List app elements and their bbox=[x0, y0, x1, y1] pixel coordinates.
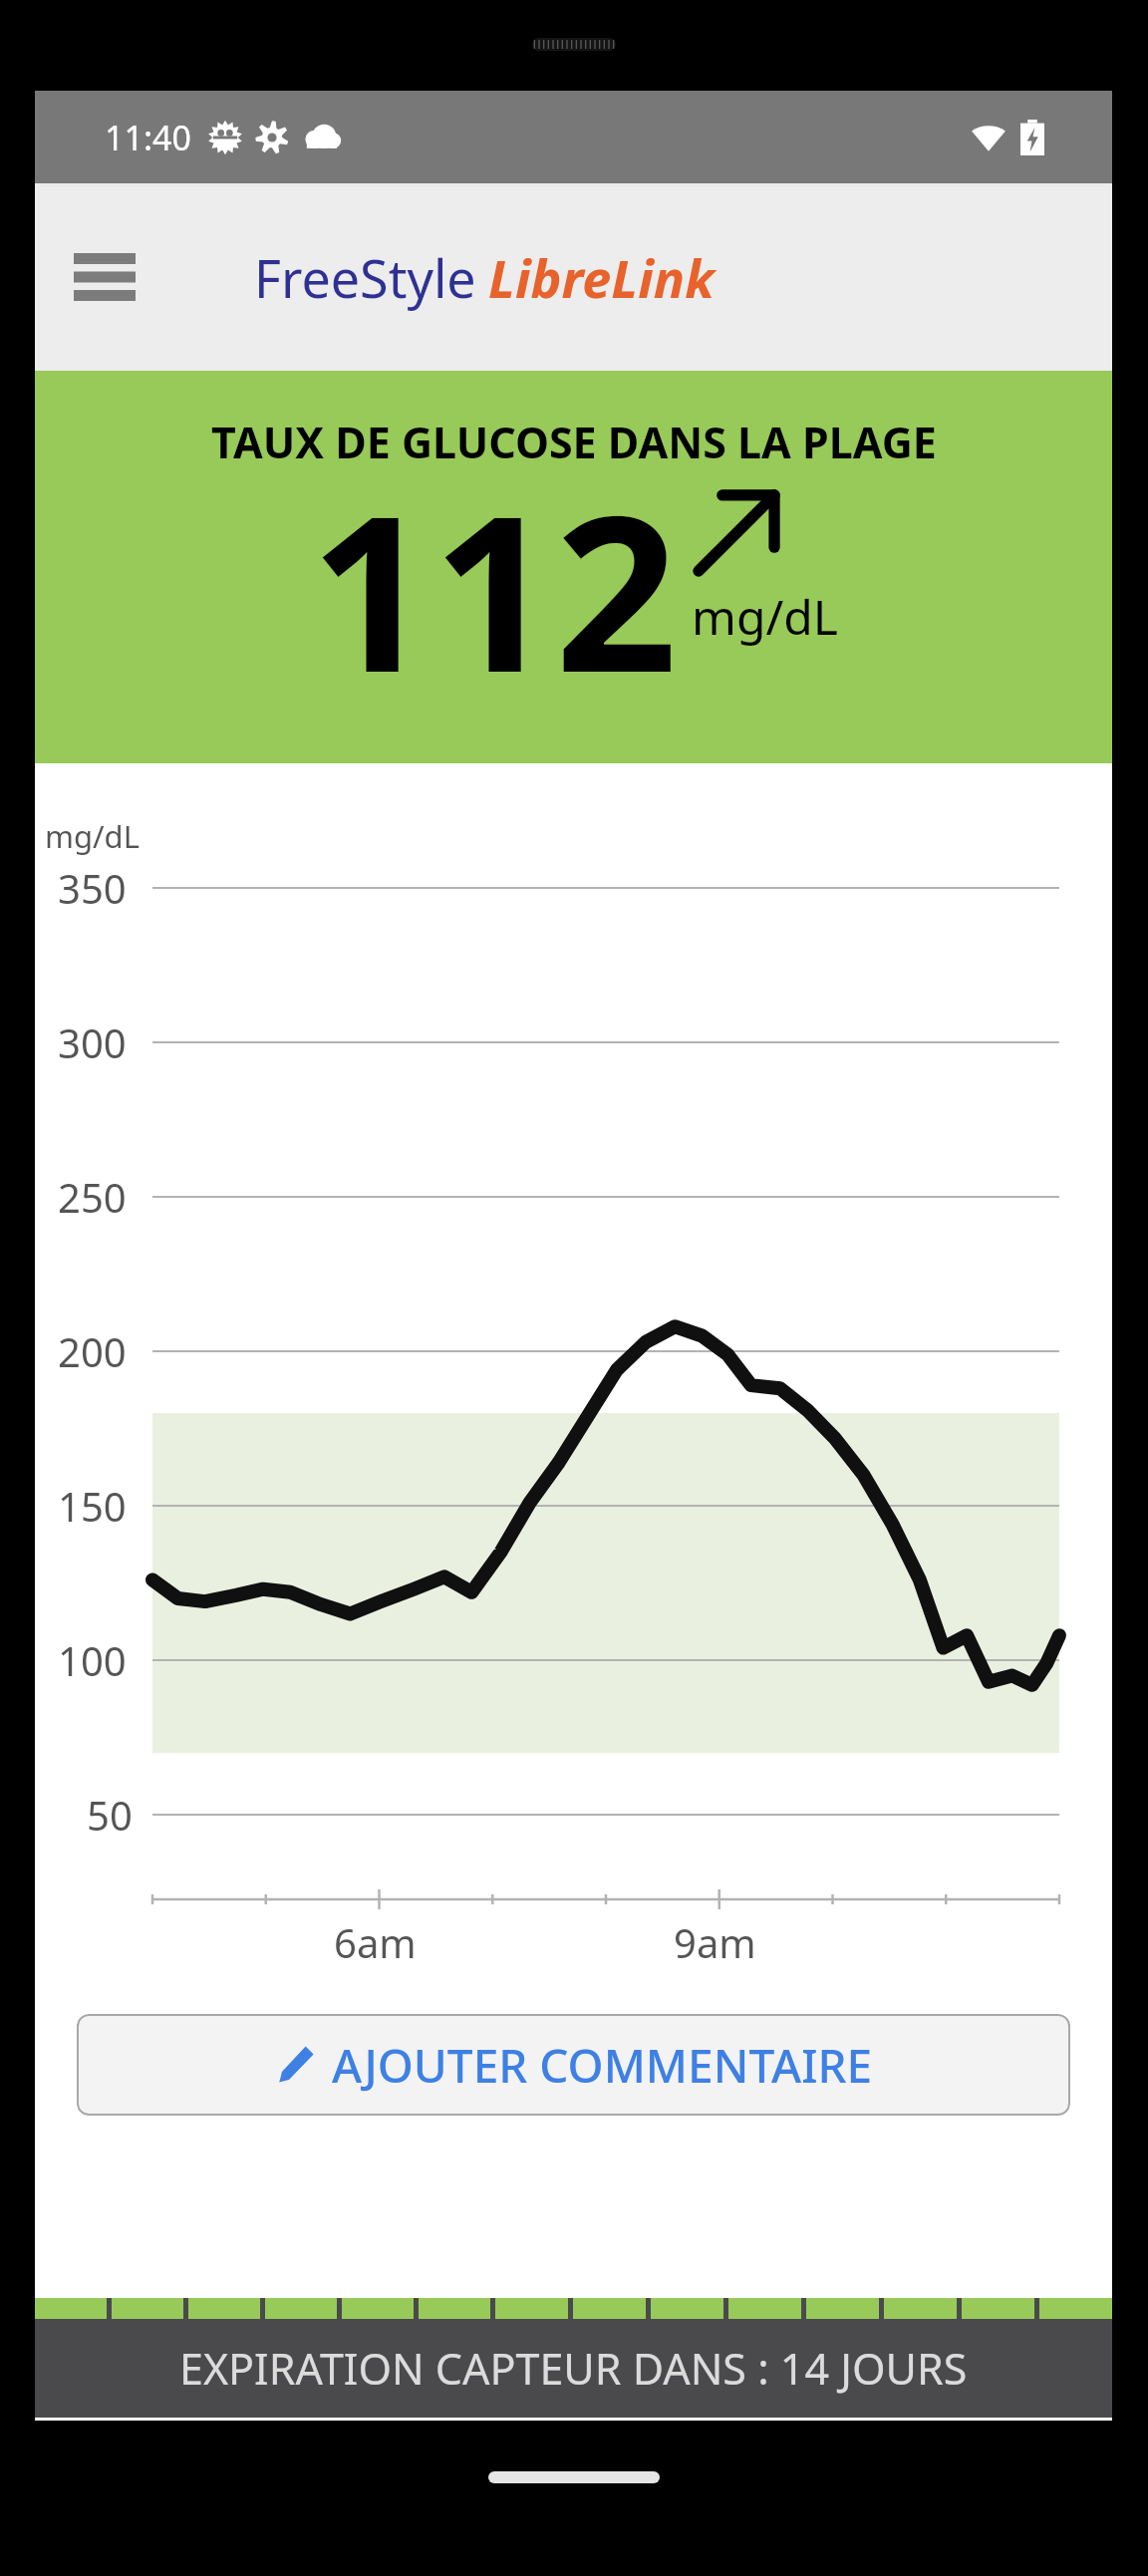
staticText: 11:40 bbox=[105, 115, 191, 160]
staticText: 250 bbox=[58, 1170, 127, 1224]
staticText: LibreLink bbox=[488, 242, 715, 313]
staticText: EXPIRATION CAPTEUR DANS : 14 JOURS bbox=[179, 2339, 968, 2398]
staticText: mg/dL bbox=[692, 584, 838, 649]
button[interactable]: AJOUTER COMMENTAIRE bbox=[77, 2014, 1070, 2116]
staticText: 9am bbox=[674, 1915, 756, 1969]
staticText: 300 bbox=[58, 1015, 127, 1069]
staticText: 150 bbox=[58, 1479, 127, 1533]
staticText: 350 bbox=[58, 861, 127, 915]
staticText: 200 bbox=[58, 1324, 127, 1378]
staticText: 6am bbox=[334, 1915, 417, 1969]
staticText: 112 bbox=[310, 442, 678, 734]
staticText: TAUX DE GLUCOSE DANS LA PLAGE bbox=[211, 413, 937, 471]
staticText: 100 bbox=[58, 1633, 127, 1687]
staticText: mg/dL bbox=[45, 815, 140, 857]
staticText: 50 bbox=[87, 1788, 133, 1842]
other: Tendance du glucose en hausse bbox=[692, 488, 781, 578]
button[interactable]: Menu bbox=[55, 227, 154, 327]
staticText: FreeStyle bbox=[254, 242, 476, 313]
staticText: AJOUTER COMMENTAIRE bbox=[332, 2034, 873, 2097]
